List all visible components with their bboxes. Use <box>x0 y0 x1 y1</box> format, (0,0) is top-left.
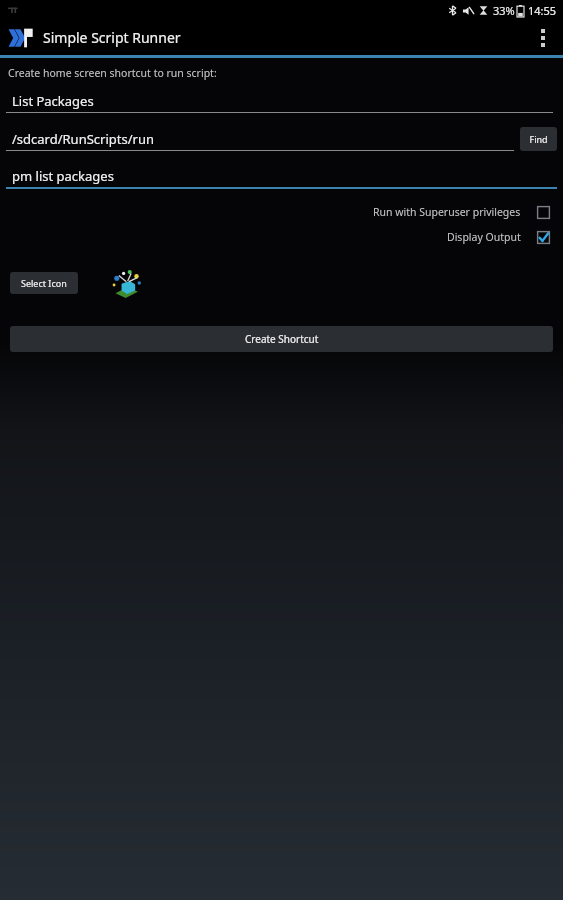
button[interactable]: /sdcard/RunScripts/run <box>0 128 520 150</box>
staticText: Run with Superuser privileges <box>373 205 521 219</box>
button[interactable]: Select Icon <box>10 272 78 294</box>
button[interactable]: Find <box>520 127 557 151</box>
staticText: 14:55 <box>528 3 557 18</box>
button[interactable]: Run with Superuser privileges <box>0 205 563 219</box>
button[interactable]: More options <box>523 20 563 55</box>
staticText: /sdcard/RunScripts/run <box>12 130 154 148</box>
staticText: Find <box>529 133 548 145</box>
staticText: Display Output <box>447 230 521 244</box>
staticText: Create Shortcut <box>245 332 319 346</box>
staticText: pm list packages <box>12 167 114 185</box>
button[interactable]: Create Shortcut <box>10 326 553 352</box>
staticText: 33% <box>493 3 515 18</box>
staticText: Select Icon <box>21 277 67 289</box>
staticText: List Packages <box>12 92 94 110</box>
button[interactable]: Display Output <box>0 230 563 244</box>
staticText: Simple Script Runner <box>43 28 181 47</box>
button[interactable]: List Packages <box>0 90 563 112</box>
staticText: Create home screen shortcut to run scrip… <box>8 66 217 80</box>
button[interactable]: pm list packages <box>0 165 563 187</box>
